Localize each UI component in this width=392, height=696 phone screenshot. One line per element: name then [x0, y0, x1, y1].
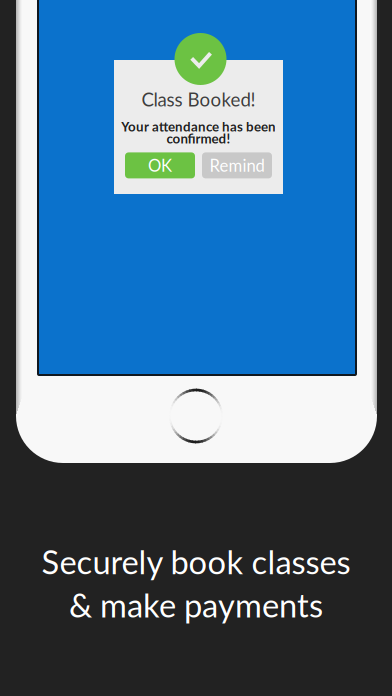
staticText: OK	[148, 155, 172, 175]
staticText: Your attendance has been	[121, 118, 276, 134]
staticText: Remind	[209, 155, 264, 175]
button[interactable]: Remind	[202, 152, 272, 178]
staticText: Securely book classes	[41, 542, 350, 581]
staticText: confirmed!	[166, 130, 230, 146]
staticText: & make payments	[69, 585, 323, 624]
button[interactable]: OK	[125, 152, 195, 178]
staticText: Class Booked!	[141, 88, 255, 110]
